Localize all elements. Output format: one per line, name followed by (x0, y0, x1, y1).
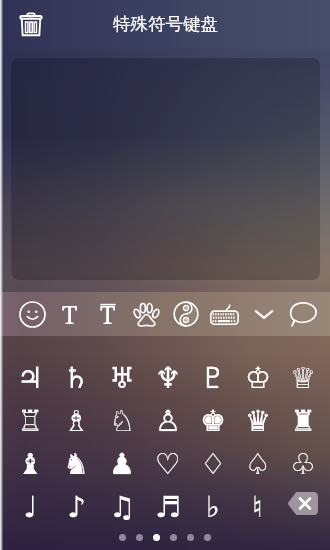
button[interactable]: ♄ (53, 353, 99, 396)
staticText: ♖ (17, 404, 43, 438)
button[interactable]: ♮ (235, 482, 280, 525)
staticText: ♮ (252, 490, 263, 524)
button[interactable]: ♬ (145, 482, 190, 525)
staticText: ♤ (245, 447, 271, 481)
staticText: ♙ (155, 404, 181, 438)
button[interactable]: ♢ (190, 439, 235, 482)
button[interactable]: ♭ (190, 482, 235, 525)
button[interactable]: Keyboard (205, 292, 244, 336)
button[interactable]: ♔ (235, 353, 280, 396)
button[interactable]: ♩ (7, 482, 53, 525)
button[interactable] (11, 58, 320, 280)
button[interactable]: ♧ (280, 439, 325, 482)
staticText: ♔ (245, 361, 271, 395)
staticText: ♆ (155, 361, 181, 395)
button[interactable]: ♜ (280, 396, 325, 439)
button[interactable]: Paw symbols (127, 292, 166, 336)
staticText: ♃ (17, 361, 43, 395)
button[interactable]: ♇ (190, 353, 235, 396)
staticText: ♬ (155, 490, 181, 524)
button[interactable]: Text style alternate (89, 292, 127, 336)
button[interactable]: ♞ (53, 439, 99, 482)
staticText: ♭ (206, 490, 220, 524)
staticText: ♜ (290, 404, 316, 438)
staticText: ♢ (200, 447, 226, 481)
staticText: 特殊符号键盘 (113, 13, 218, 35)
staticText: ♗ (63, 404, 89, 438)
button[interactable]: ♘ (99, 396, 145, 439)
staticText: T (62, 297, 78, 331)
button[interactable]: Yin yang symbols (166, 292, 205, 336)
staticText: ♛ (245, 404, 271, 438)
button[interactable]: Text style (51, 292, 89, 336)
staticText: ♧ (290, 447, 316, 481)
staticText: ♅ (109, 361, 135, 395)
button[interactable]: ♤ (235, 439, 280, 482)
staticText: ♘ (109, 404, 135, 438)
staticText: T (100, 297, 116, 331)
staticText: ♕ (290, 361, 316, 395)
staticText: ♡ (155, 447, 181, 481)
button[interactable]: ♝ (7, 439, 53, 482)
button[interactable]: Backspace (280, 482, 325, 525)
button[interactable]: Chat (283, 292, 322, 336)
button[interactable]: Emoji (13, 292, 51, 336)
staticText: ♩ (23, 490, 37, 524)
button[interactable]: ♡ (145, 439, 190, 482)
button[interactable]: ♚ (190, 396, 235, 439)
staticText: ♞ (63, 447, 89, 481)
button[interactable]: ♖ (7, 396, 53, 439)
button[interactable]: ♫ (99, 482, 145, 525)
button[interactable] (287, 492, 318, 515)
button[interactable]: ♛ (235, 396, 280, 439)
button[interactable]: ♅ (99, 353, 145, 396)
button[interactable]: ♙ (145, 396, 190, 439)
staticText: ♇ (200, 361, 226, 395)
button[interactable]: ♆ (145, 353, 190, 396)
button[interactable]: ♕ (280, 353, 325, 396)
button[interactable]: Collapse keyboard (244, 292, 283, 336)
button[interactable]: ♟ (99, 439, 145, 482)
staticText: ♫ (109, 490, 135, 524)
staticText: ♪ (67, 490, 86, 524)
staticText: ♄ (63, 361, 89, 395)
button[interactable]: Delete (9, 2, 53, 46)
button[interactable]: ♪ (53, 482, 99, 525)
button[interactable]: ♗ (53, 396, 99, 439)
staticText: ♟ (109, 447, 135, 481)
staticText: ♝ (17, 447, 43, 481)
button[interactable]: ♃ (7, 353, 53, 396)
staticText: ♚ (200, 404, 226, 438)
